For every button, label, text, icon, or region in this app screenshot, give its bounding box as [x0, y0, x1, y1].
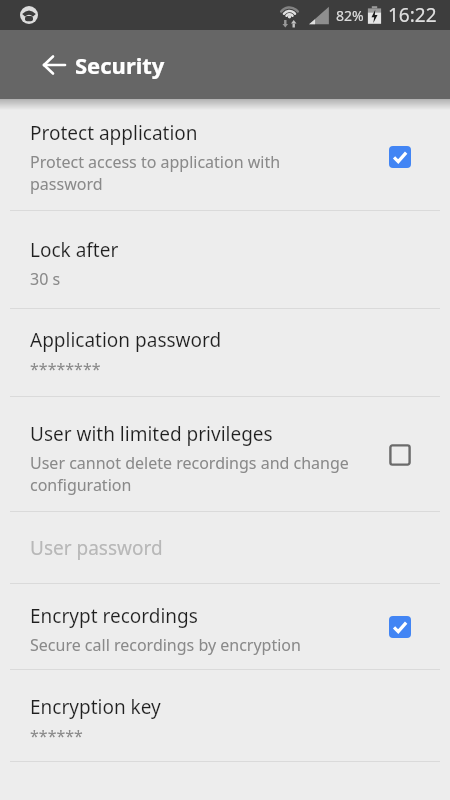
staticText: password	[30, 173, 103, 195]
staticText: Lock after	[30, 237, 119, 263]
button[interactable]	[36, 47, 72, 83]
button[interactable]: Protect application	[0, 99, 450, 210]
staticText: Encryption key	[30, 694, 161, 720]
staticText: Protect application	[30, 120, 198, 146]
button[interactable]: Lock after	[0, 211, 450, 308]
staticText: ********	[30, 358, 101, 380]
staticText: 16:22	[388, 2, 437, 28]
staticText: 30 s	[30, 268, 61, 290]
staticText: Application password	[30, 327, 222, 353]
staticText: Security	[75, 50, 165, 80]
button[interactable]: Encrypt recordings	[0, 584, 450, 669]
button[interactable]: Encryption key	[0, 670, 450, 761]
button[interactable]: Application password	[0, 309, 450, 396]
staticText: Protect access to application with	[30, 151, 281, 173]
button[interactable]: User with limited privileges	[0, 397, 450, 511]
staticText: User password	[30, 535, 163, 561]
staticText: ******	[30, 725, 83, 747]
staticText: User cannot delete recordings and change	[30, 452, 349, 474]
staticText: Secure call recordings by encryption	[30, 634, 301, 656]
staticText: Encrypt recordings	[30, 603, 198, 629]
staticText: configuration	[30, 474, 132, 496]
staticText: 82%	[336, 6, 364, 25]
staticText: User with limited privileges	[30, 421, 273, 447]
button[interactable]: User password	[0, 512, 450, 583]
